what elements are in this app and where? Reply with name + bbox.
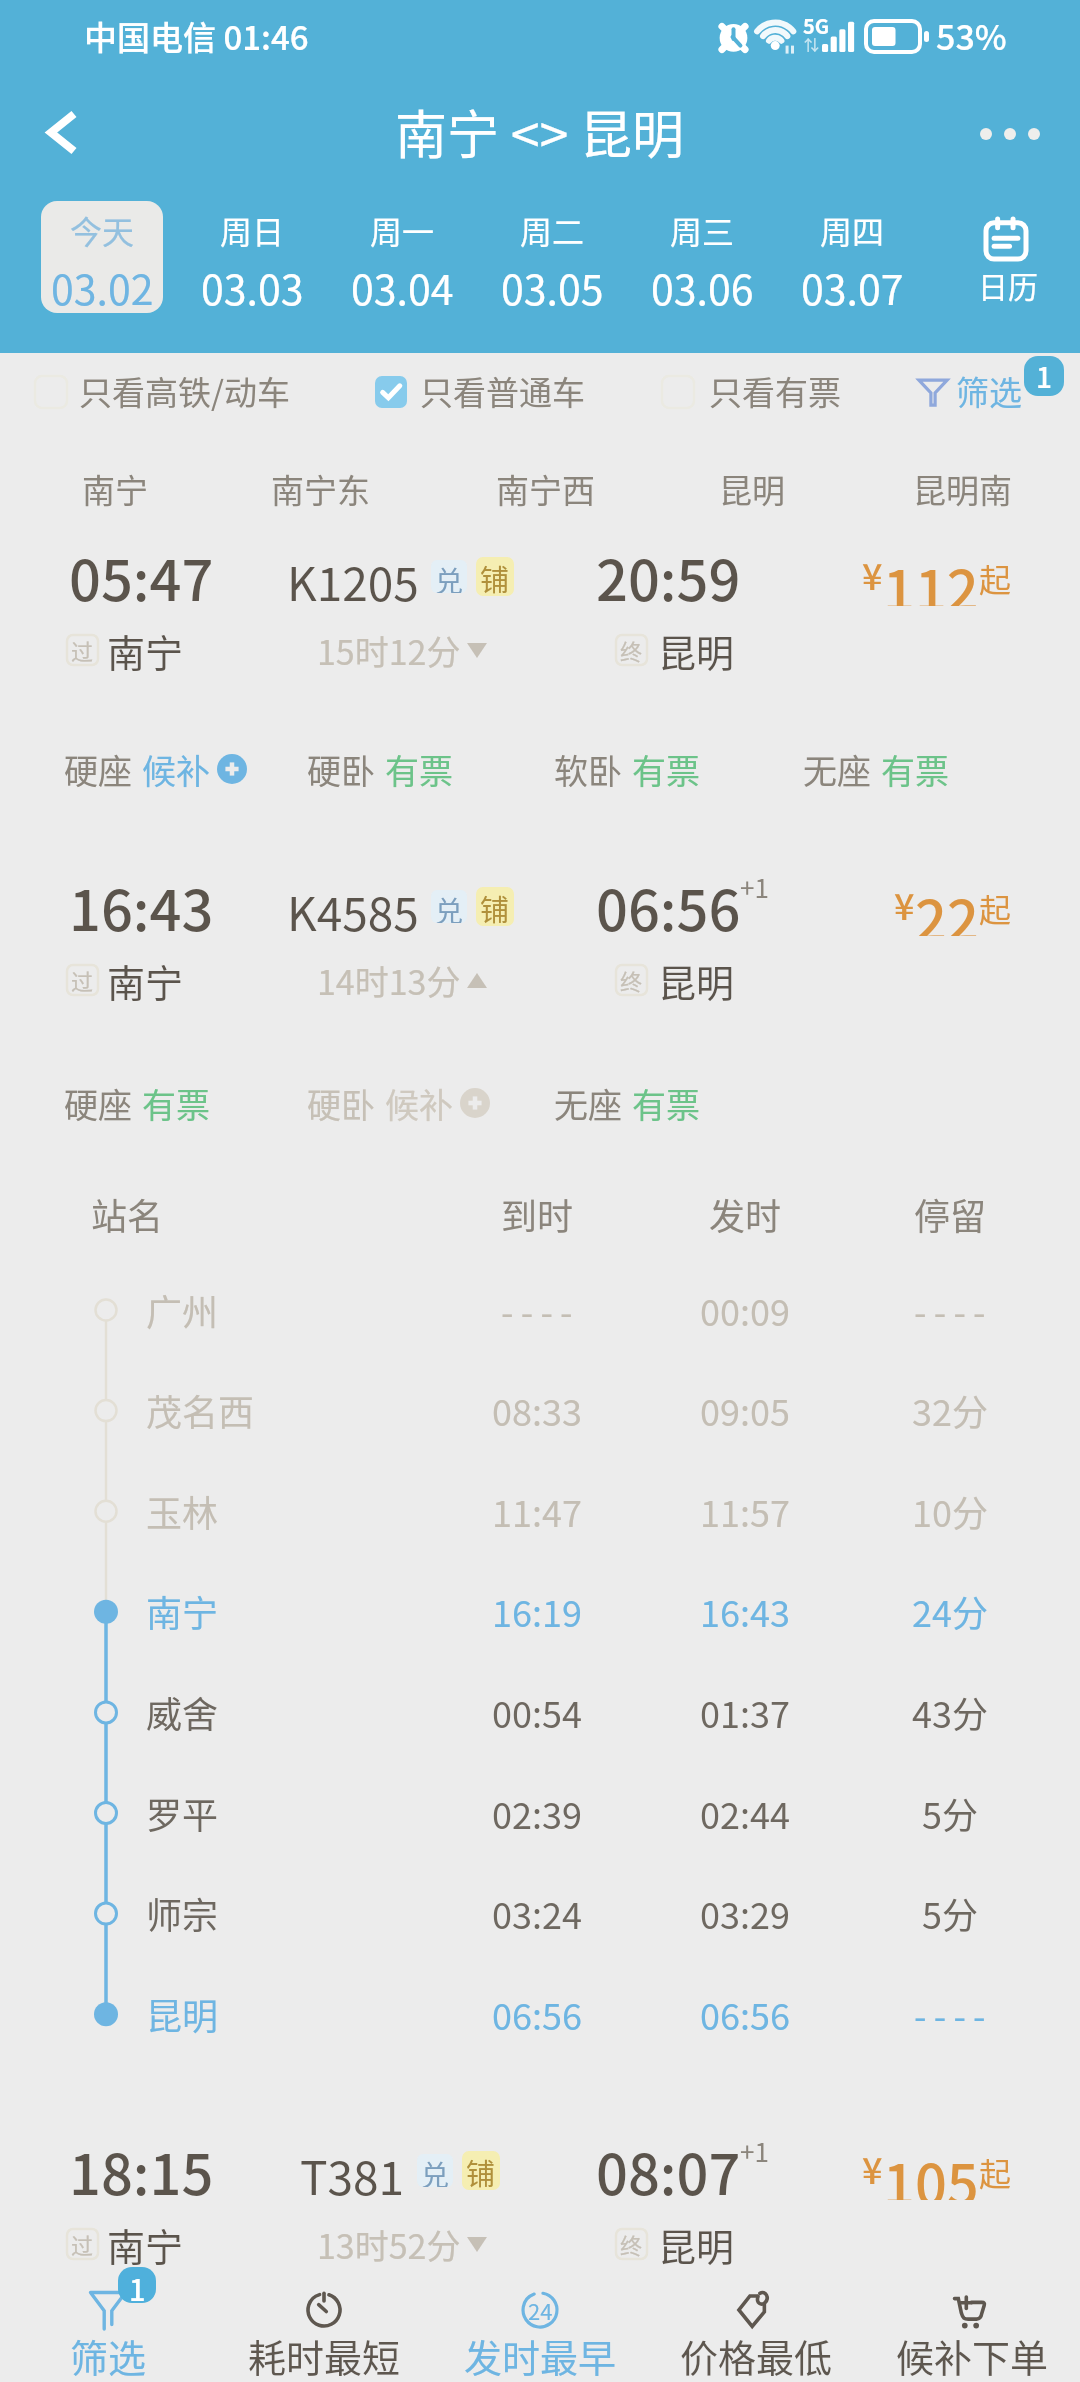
button[interactable]: 候补下单	[864, 2257, 1080, 2382]
staticText: - - - -	[501, 1284, 573, 1336]
staticText: 20:59	[596, 536, 741, 617]
staticText: 有票	[385, 745, 453, 794]
staticText: 到时	[501, 1188, 574, 1240]
staticText: 过	[71, 2228, 94, 2260]
button[interactable]	[912, 360, 1052, 424]
staticText: K4585	[287, 878, 419, 934]
staticText: 无座	[554, 1079, 622, 1128]
button[interactable]: 耗时最短	[216, 2257, 432, 2382]
staticText: 南宁	[107, 623, 184, 678]
staticText: 03.07	[801, 257, 904, 316]
staticText: 发时	[709, 1188, 782, 1240]
staticText: 16:19	[492, 1585, 582, 1637]
staticText: 南宁东	[271, 465, 370, 513]
staticText: 08:07	[596, 2130, 741, 2211]
button[interactable]	[60, 1360, 1080, 1460]
button[interactable]: 1	[0, 2257, 216, 2382]
staticText: 起	[979, 885, 1012, 931]
staticText: 02:44	[700, 1787, 790, 1839]
staticText: 有票	[632, 1079, 700, 1128]
staticText: - - - -	[914, 1988, 986, 2040]
staticText: 起	[979, 2149, 1012, 2195]
staticText: 站名	[91, 1188, 164, 1240]
other: Wifi	[759, 20, 795, 52]
staticText: 08:33	[492, 1384, 582, 1436]
staticText: 玉林	[146, 1485, 219, 1537]
button[interactable]	[60, 1260, 1080, 1360]
staticText: 22	[915, 876, 979, 936]
button[interactable]	[0, 846, 1080, 1036]
staticText: 硬座	[64, 1079, 132, 1128]
staticText: 43分	[912, 1686, 988, 1738]
button[interactable]	[0, 516, 1080, 706]
staticText: 起	[979, 555, 1012, 601]
staticText: +1	[740, 2132, 769, 2170]
staticText: 筛选	[70, 2328, 147, 2382]
staticText: - - - -	[914, 1284, 986, 1336]
button[interactable]: 24	[432, 2257, 648, 2382]
staticText: 发时最早	[464, 2328, 617, 2382]
staticText: 周一	[370, 207, 435, 253]
staticText: 今天	[70, 207, 135, 253]
staticText: 11:57	[700, 1485, 790, 1537]
staticText: 价格最低	[680, 2328, 833, 2382]
staticText: 茂名西	[146, 1384, 255, 1436]
staticText: 昆明	[658, 2217, 735, 2272]
staticText: 05:47	[69, 536, 214, 617]
staticText: 无座	[803, 745, 871, 794]
button[interactable]	[187, 201, 317, 313]
button[interactable]: More options	[960, 81, 1060, 186]
staticText: 01:37	[700, 1686, 790, 1738]
button[interactable]	[60, 1763, 1080, 1863]
staticText: 候补	[142, 745, 210, 794]
staticText: 24	[528, 2294, 553, 2326]
button[interactable]: 价格最低	[648, 2257, 864, 2382]
staticText: 兑	[435, 560, 464, 593]
staticText: 1	[1036, 356, 1052, 396]
button[interactable]	[60, 1561, 1080, 1661]
staticText: 03.02	[51, 257, 154, 316]
staticText: 11:47	[492, 1485, 582, 1537]
button[interactable]	[30, 362, 320, 422]
staticText: 02:39	[492, 1787, 582, 1839]
button[interactable]	[60, 1461, 1080, 1561]
staticText: 罗平	[146, 1787, 219, 1839]
staticText: 03:24	[492, 1887, 582, 1939]
staticText: 终	[620, 964, 643, 996]
staticText: 南宁 <> 昆明	[395, 94, 685, 169]
button[interactable]	[0, 2110, 1080, 2300]
staticText: 师宗	[146, 1887, 219, 1939]
staticText: 03:29	[700, 1887, 790, 1939]
staticText: 硬卧	[307, 1079, 375, 1128]
staticText: 09:05	[700, 1384, 790, 1436]
button[interactable]	[41, 201, 163, 313]
staticText: 06:56	[492, 1988, 582, 2040]
staticText: 筛选	[956, 367, 1022, 415]
staticText: 只看有票	[709, 367, 841, 415]
button[interactable]	[60, 1662, 1080, 1762]
staticText: 06:56	[596, 866, 741, 947]
staticText: 03.03	[201, 257, 304, 316]
staticText: 停留	[914, 1188, 987, 1240]
button[interactable]	[487, 201, 617, 313]
staticText: 铺	[480, 557, 510, 596]
button[interactable]	[337, 201, 467, 313]
button[interactable]	[60, 1964, 1080, 2064]
staticText: ¥	[862, 2142, 883, 2194]
button[interactable]: Back	[12, 80, 112, 185]
staticText: 硬座	[64, 745, 132, 794]
staticText: 软卧	[554, 745, 622, 794]
button[interactable]	[787, 201, 917, 313]
button[interactable]	[370, 362, 600, 422]
staticText: 10分	[912, 1485, 988, 1537]
button[interactable]	[60, 1863, 1080, 1963]
staticText: 03.06	[651, 257, 754, 316]
staticText: 耗时最短	[248, 2328, 401, 2382]
button[interactable]	[637, 201, 767, 313]
staticText: ⇅	[804, 34, 820, 56]
button[interactable]: Calendar	[945, 196, 1065, 318]
staticText: 硬卧	[307, 745, 375, 794]
staticText: 昆明	[658, 623, 735, 678]
button[interactable]	[657, 362, 857, 422]
staticText: 日历	[978, 263, 1038, 306]
